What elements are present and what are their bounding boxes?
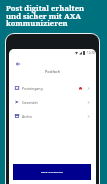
button[interactable]: Back [13,59,22,68]
staticText: Posteingang [22,86,43,91]
staticText: 12:30 [87,51,95,55]
button[interactable]: Gesendet [9,95,96,109]
staticText: 1 [80,87,82,90]
staticText: Gesendet [22,100,38,105]
staticText: Post digital erhalten und sicher mit AXA… [6,3,94,28]
button[interactable]: NEUE NACHRICHT [13,164,91,180]
staticText: Archiv [22,114,33,119]
button[interactable]: Posteingang [9,81,96,95]
button[interactable]: Archiv [9,109,96,123]
staticText: Postfach [9,69,96,74]
staticText: NEUE NACHRICHT [41,171,64,174]
